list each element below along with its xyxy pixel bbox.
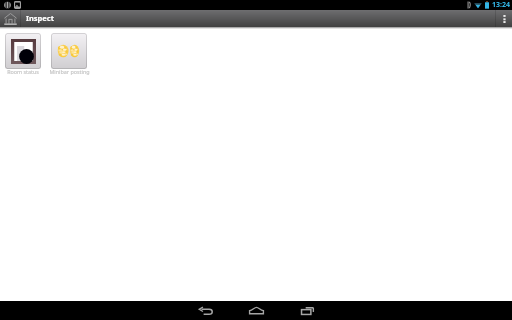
button[interactable]: Recent apps	[282, 301, 333, 320]
button[interactable]: Home	[0, 10, 20, 27]
button[interactable]: Minibar posting	[46, 33, 92, 76]
button[interactable]: Home	[231, 301, 282, 320]
staticText: Room status	[7, 68, 39, 75]
button[interactable]: Room status	[0, 33, 46, 76]
staticText: Minibar posting	[49, 68, 90, 75]
staticText: Inspect	[26, 13, 54, 23]
button[interactable]: More options	[496, 10, 512, 27]
staticText: 13:24	[492, 0, 510, 10]
button[interactable]: Back	[180, 301, 231, 320]
